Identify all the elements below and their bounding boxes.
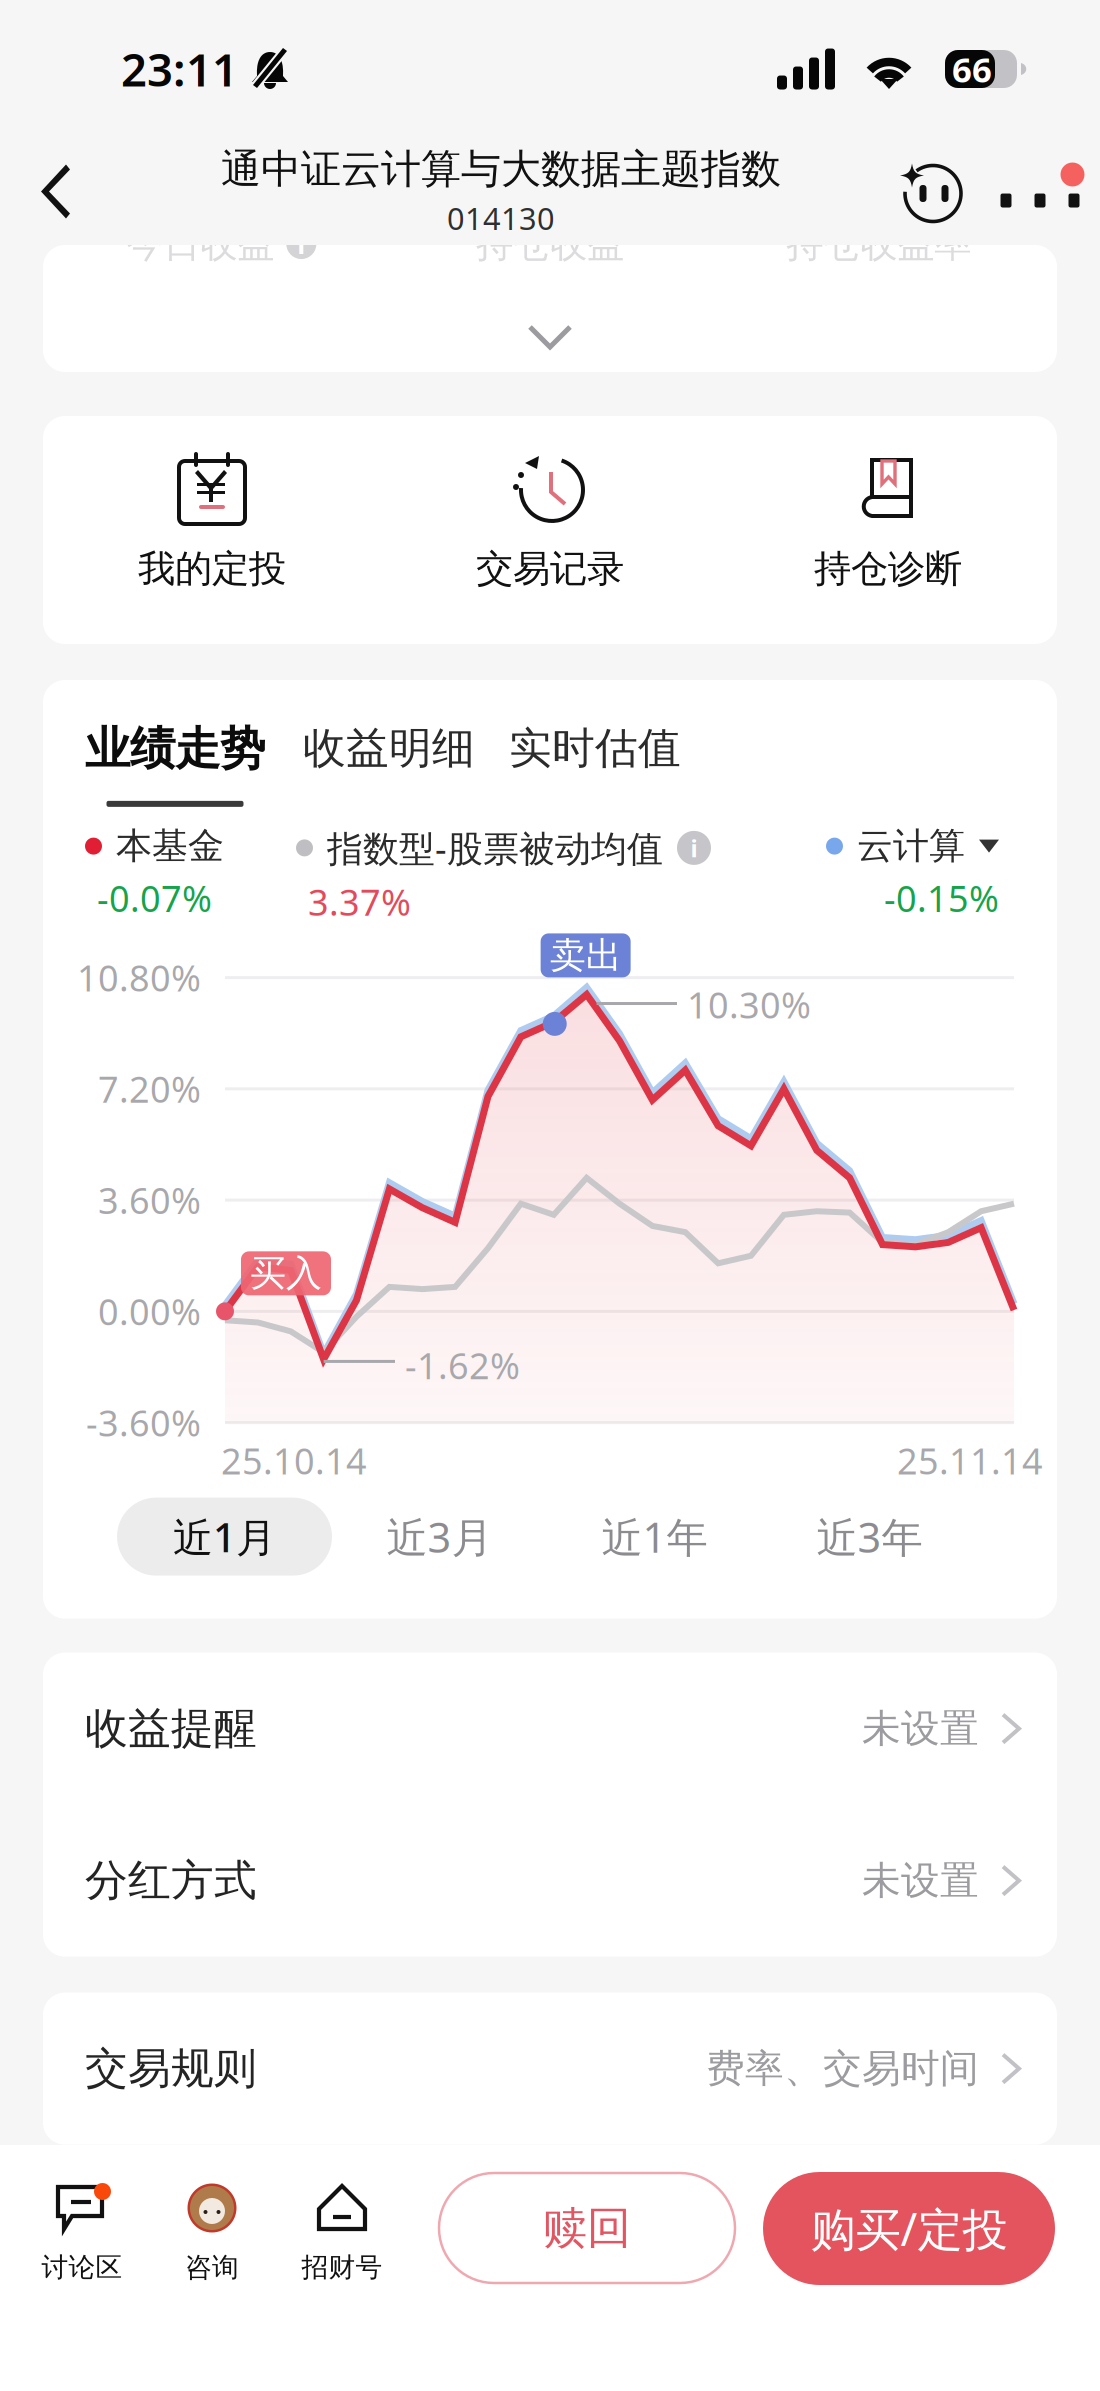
staticText: 招财号	[301, 2251, 382, 2284]
button[interactable]: 更多	[980, 137, 1100, 245]
button[interactable]: 业绩走势	[85, 722, 265, 806]
staticText: 云计算	[857, 824, 965, 868]
staticText: 咨询	[185, 2251, 239, 2284]
button[interactable]: 购买/定投	[763, 2145, 1055, 2285]
button[interactable]: 实时估值	[475, 722, 681, 806]
staticText: 近3年	[816, 1509, 922, 1564]
staticText: 收益提醒	[85, 1702, 257, 1755]
staticText: 实时估值	[509, 722, 681, 774]
button[interactable]: 智能助手	[884, 137, 980, 245]
staticText: 通中证云计算与大数据主题指数	[221, 145, 781, 194]
button[interactable]: 返回	[0, 137, 110, 245]
staticText: 我的定投	[138, 546, 286, 592]
button[interactable]: 赎回	[439, 2145, 735, 2283]
staticText: 10.30%	[687, 980, 811, 1028]
staticText: 分红方式	[85, 1854, 257, 1907]
staticText: 今日收益	[126, 221, 274, 267]
staticText: 66	[952, 46, 992, 92]
staticText: 25.11.14	[897, 1437, 1043, 1484]
staticText: -1.62%	[405, 1341, 520, 1389]
staticText: 持仓收益率	[786, 221, 971, 267]
button[interactable]: 近3月	[332, 1498, 547, 1576]
staticText: 未设置	[862, 1857, 979, 1904]
button[interactable]: 咨询	[147, 2145, 277, 2345]
staticText: 7.20%	[98, 1065, 201, 1113]
staticText: 讨论区	[41, 2251, 122, 2284]
staticText: -0.15%	[884, 874, 999, 922]
staticText: 未设置	[862, 1705, 979, 1752]
staticText: 卖出	[550, 933, 622, 977]
button[interactable]: 近1月	[117, 1498, 332, 1576]
staticText: 本基金	[116, 824, 224, 868]
staticText: -0.07%	[97, 874, 212, 922]
staticText: 23:11	[121, 39, 238, 99]
button[interactable]: 分红方式	[43, 1805, 1057, 1957]
staticText: 10.80%	[77, 954, 201, 1001]
staticText: 25.10.14	[221, 1437, 367, 1484]
button[interactable]: 讨论区	[17, 2145, 147, 2345]
staticText: 近1年	[601, 1509, 707, 1564]
button[interactable]: 交易记录	[381, 416, 719, 644]
staticText: 014130	[447, 198, 555, 238]
staticText: 3.37%	[308, 878, 411, 926]
staticText: 0.00%	[98, 1287, 201, 1335]
staticText: 近3月	[386, 1509, 492, 1564]
staticText: 赎回	[543, 2201, 631, 2255]
button[interactable]: 近3年	[762, 1498, 977, 1576]
staticText: 买入	[250, 1251, 322, 1295]
staticText: i	[297, 226, 305, 262]
button[interactable]: 招财号	[277, 2145, 407, 2345]
staticText: 购买/定投	[810, 2198, 1007, 2259]
staticText: 交易规则	[85, 2042, 257, 2095]
staticText: -3.60%	[86, 1399, 201, 1446]
staticText: 3.60%	[98, 1176, 201, 1224]
staticText: 持仓收益	[476, 221, 624, 267]
staticText: i	[690, 832, 697, 864]
button[interactable]: 收益提醒	[43, 1653, 1057, 1805]
button[interactable]: 收益明细	[265, 722, 475, 806]
button[interactable]: 持仓诊断	[719, 416, 1057, 644]
button[interactable]: 我的定投	[43, 416, 381, 644]
button[interactable]: 近1年	[547, 1498, 762, 1576]
staticText: 指数型-股票被动均值	[327, 824, 663, 872]
staticText: 近1月	[173, 1510, 276, 1563]
staticText: 费率、交易时间	[706, 2045, 979, 2092]
button[interactable]: 交易规则	[43, 1993, 1057, 2145]
staticText: 业绩走势	[85, 721, 265, 777]
staticText: 交易记录	[476, 546, 624, 592]
staticText: 持仓诊断	[814, 546, 962, 592]
staticText: 收益明细	[303, 722, 475, 774]
